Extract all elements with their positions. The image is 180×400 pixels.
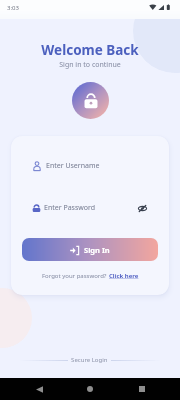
staticText: Secure Login	[68, 356, 111, 364]
staticText: Enter Username	[46, 161, 100, 171]
staticText: Enter Password	[44, 203, 96, 213]
button[interactable]: Enter Username	[22, 157, 158, 175]
staticText: Sign In	[84, 245, 110, 255]
button[interactable]: Show password	[135, 201, 149, 215]
button[interactable]: Back	[26, 378, 52, 400]
button[interactable]: Enter Password	[22, 199, 158, 217]
staticText: Forgot your password?	[42, 272, 109, 280]
button[interactable]: Sign In	[22, 238, 158, 261]
button[interactable]: Recents	[129, 378, 155, 400]
button[interactable]: Click here	[109, 272, 139, 280]
button[interactable]: Home	[77, 378, 103, 400]
staticText: 3:03	[7, 4, 19, 12]
staticText: Welcome Back	[0, 41, 180, 59]
staticText: Sign in to continue	[0, 60, 180, 70]
